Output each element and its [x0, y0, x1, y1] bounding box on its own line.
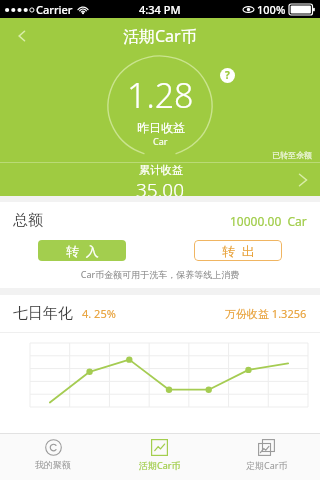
button[interactable]: 转 入	[38, 240, 126, 261]
staticText: 100%	[257, 2, 286, 17]
staticText: 转 入	[66, 242, 99, 260]
staticText: 活期Car币	[139, 459, 181, 471]
staticText: 七日年化	[13, 304, 73, 323]
staticText: 累计收益	[139, 163, 183, 177]
staticText: 1.28	[127, 72, 194, 118]
staticText: 10000.00 Car	[230, 213, 307, 229]
button[interactable]: Help	[216, 64, 238, 86]
staticText: 35.00	[136, 177, 185, 196]
button[interactable]: 我的聚额	[0, 434, 106, 480]
staticText: 定期Car币	[246, 459, 288, 471]
staticText: 4:34 PM	[139, 2, 181, 17]
button[interactable]: 转 出	[194, 240, 282, 261]
staticText: Car	[153, 135, 168, 147]
staticText: ?	[225, 68, 230, 82]
staticText: 活期Car币	[123, 25, 197, 47]
staticText: 转 出	[222, 242, 255, 260]
staticText: 总额	[13, 211, 43, 230]
staticText: 已转至余额	[272, 150, 312, 160]
button[interactable]: 定期Car币	[213, 434, 320, 480]
staticText: 我的聚额	[35, 459, 71, 470]
button[interactable]: Back	[0, 18, 44, 54]
button[interactable]: 累计收益	[0, 163, 320, 196]
staticText: 昨日收益	[137, 120, 185, 135]
staticText: 万份收益 1.3256	[225, 306, 307, 321]
staticText: 4. 25%	[82, 306, 116, 321]
staticText: Carrier	[36, 2, 73, 17]
staticText: Car币金额可用于洗车，保养等线上消费	[0, 268, 320, 280]
button[interactable]: 活期Car币	[106, 434, 213, 480]
